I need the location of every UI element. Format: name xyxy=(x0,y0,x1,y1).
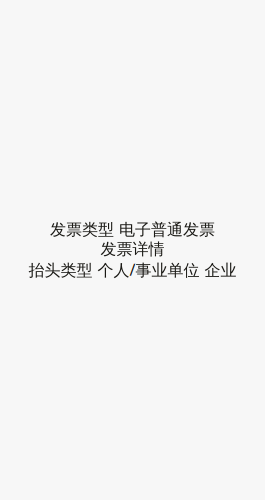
staticText: 抬头类型 个人/事业单位 企业 xyxy=(28,259,236,280)
staticText: 发票详情 xyxy=(100,239,164,259)
staticText: 发票类型 电子普通发票 xyxy=(50,220,215,239)
